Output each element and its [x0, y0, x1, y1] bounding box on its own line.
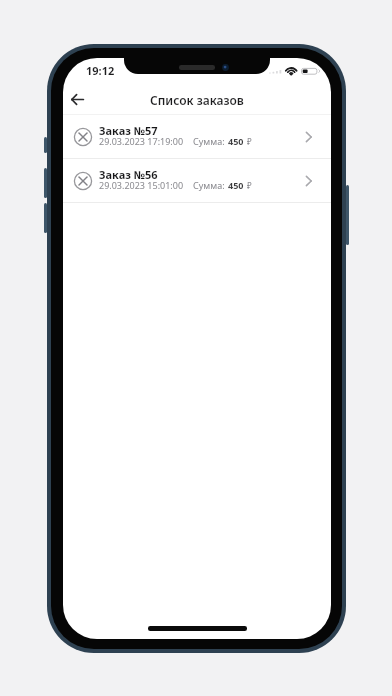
staticText: 29.03.2023 15:01:00 — [99, 179, 184, 191]
staticText: Сумма: — [193, 179, 225, 191]
button[interactable] — [71, 93, 84, 106]
staticText: Список заказов — [150, 92, 244, 108]
staticText: 450 — [228, 179, 244, 191]
staticText: 19:12 — [86, 63, 115, 78]
staticText: ₽ — [247, 180, 252, 191]
staticText: 450 — [228, 135, 244, 147]
staticText: ₽ — [247, 136, 252, 147]
button[interactable]: Заказ №56 — [63, 159, 331, 202]
staticText: Сумма: — [193, 135, 225, 147]
button[interactable]: Заказ №57 — [63, 115, 331, 158]
staticText: Заказ №56 — [99, 167, 158, 182]
staticText: Заказ №57 — [99, 123, 158, 138]
staticText: 29.03.2023 17:19:00 — [99, 135, 184, 147]
